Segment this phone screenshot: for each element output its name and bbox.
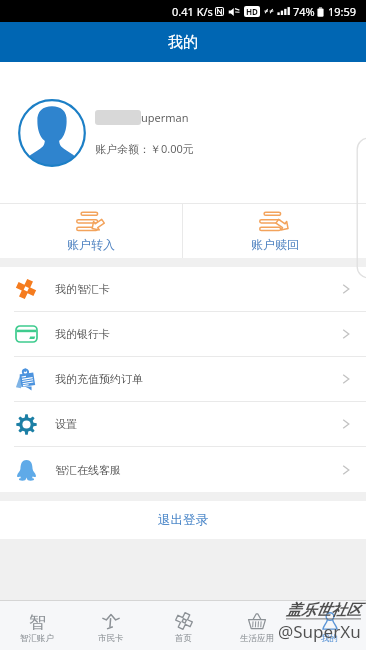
staticText: 我的智汇卡 [55,282,110,296]
staticText: 我的充值预约订单 [55,372,143,386]
staticText: HD [246,6,258,17]
staticText: 智 [29,612,46,630]
staticText: 账户赎回 [251,237,299,252]
staticText: 首页 [175,633,192,644]
button[interactable]: 智汇在线客服 [0,447,366,492]
staticText: 盖乐世社区 [286,601,361,620]
staticText: 智汇在线客服 [55,463,121,477]
button[interactable]: 我的银行卡 [0,312,366,356]
button[interactable]: 我的智汇卡 [0,267,366,311]
staticText: uperman [141,110,189,125]
button[interactable]: 智 [0,601,74,650]
button[interactable]: 设置 [0,402,366,446]
staticText: 我的 [321,633,338,644]
button[interactable]: 首页 [147,601,220,650]
button[interactable]: 退出登录 [0,501,366,539]
staticText: 账户余额：￥0.00元 [95,141,194,156]
button[interactable]: 市民卡 [74,601,147,650]
button[interactable]: 账户转入 [0,204,182,258]
button[interactable]: 生活应用 [220,601,293,650]
button[interactable]: 账户赎回 [183,204,366,258]
staticText: 生活应用 [240,633,274,644]
staticText: 设置 [55,417,77,431]
button[interactable]: 我的充值预约订单 [0,357,366,401]
staticText: 我的银行卡 [55,327,110,341]
staticText: 19:59 [328,4,357,19]
staticText: 我的 [168,33,198,52]
staticText: @SuperXu [278,620,361,643]
staticText: 退出登录 [158,512,208,528]
staticText: 74% [293,4,315,19]
staticText: 市民卡 [98,633,124,644]
staticText: 0.41 K/s [172,4,213,19]
staticText: 智汇账户 [20,633,54,644]
button[interactable]: 我的 [293,601,366,650]
staticText: 账户转入 [67,237,115,252]
